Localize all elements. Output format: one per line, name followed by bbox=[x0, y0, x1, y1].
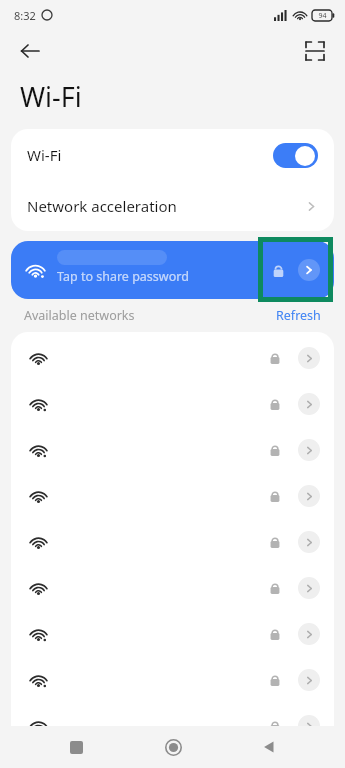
staticText: 94 bbox=[318, 11, 327, 21]
button[interactable] bbox=[11, 427, 334, 473]
button[interactable] bbox=[11, 381, 334, 427]
button[interactable]: Refresh bbox=[276, 307, 321, 324]
button[interactable]: Back bbox=[12, 33, 48, 69]
button[interactable]: Wi-Fi on bbox=[273, 143, 318, 168]
button[interactable]: Back bbox=[249, 727, 289, 767]
button[interactable]: Tap to share password bbox=[11, 241, 334, 299]
staticText: Available networks bbox=[24, 307, 135, 324]
button[interactable] bbox=[11, 657, 334, 703]
button[interactable]: Home bbox=[153, 727, 193, 767]
staticText: Wi-Fi bbox=[27, 145, 62, 165]
button[interactable] bbox=[11, 565, 334, 611]
staticText: 8:32 bbox=[14, 8, 36, 23]
button[interactable]: Scan QR code bbox=[297, 33, 333, 69]
button[interactable] bbox=[11, 519, 334, 565]
button[interactable] bbox=[11, 703, 334, 749]
button[interactable]: Network details bbox=[298, 259, 320, 281]
staticText: Network acceleration bbox=[27, 196, 177, 216]
staticText: Wi-Fi bbox=[20, 78, 82, 115]
button[interactable]: Network acceleration bbox=[11, 181, 334, 231]
button[interactable]: Recent apps bbox=[56, 727, 96, 767]
staticText: Tap to share password bbox=[57, 268, 189, 285]
button[interactable] bbox=[11, 335, 334, 381]
staticText: Refresh bbox=[276, 307, 321, 324]
button[interactable] bbox=[11, 611, 334, 657]
button[interactable]: Wi-Fi bbox=[11, 129, 334, 181]
button[interactable] bbox=[11, 473, 334, 519]
